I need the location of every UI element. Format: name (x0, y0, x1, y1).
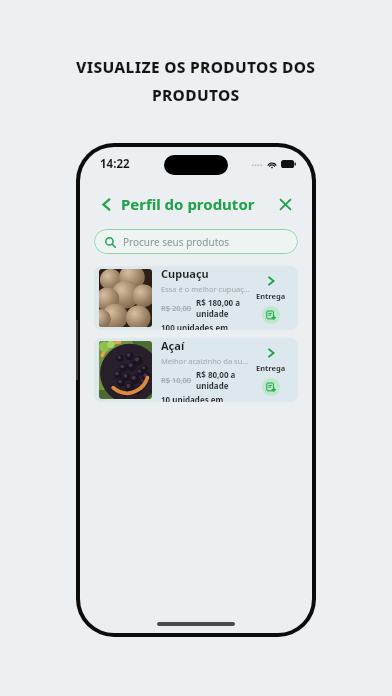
button[interactable]: Cupuaçu (94, 266, 298, 330)
staticText: 10 unidades em estoque (161, 394, 250, 402)
staticText: Procure seus produtos (123, 235, 230, 249)
button[interactable]: Abrir produto (263, 273, 279, 289)
button[interactable]: Abrir produto (263, 345, 279, 361)
button[interactable]: Adicionar estoque (262, 306, 280, 324)
staticText: PRODUTOS (152, 84, 240, 105)
staticText: Entrega (256, 291, 286, 301)
staticText: Entrega (256, 363, 286, 373)
staticText: R$ 180,00 a unidade (196, 297, 250, 319)
staticText: 100 unidades em estoque (161, 322, 250, 330)
button[interactable]: Back (96, 194, 116, 214)
staticText: Melhor acaizinho da sua vida... (161, 356, 250, 366)
staticText: Perfil do produtor (121, 194, 255, 214)
staticText: R$ 20,00 (161, 303, 192, 313)
button[interactable]: Procure seus produtos (94, 229, 298, 254)
button[interactable]: Açaí (94, 338, 298, 402)
staticText: R$ 80,00 a unidade (196, 369, 250, 391)
staticText: Cupuaçu (161, 266, 209, 281)
staticText: VISUALIZE OS PRODUTOS DOS (76, 56, 316, 77)
button[interactable]: Adicionar estoque (262, 378, 280, 396)
staticText: Açaí (161, 338, 185, 353)
staticText: Essa é o melhor cupuaçu que... (161, 284, 250, 294)
staticText: 14:22 (100, 156, 130, 172)
staticText: R$ 10,00 (161, 375, 192, 385)
button[interactable]: Close (274, 193, 296, 215)
